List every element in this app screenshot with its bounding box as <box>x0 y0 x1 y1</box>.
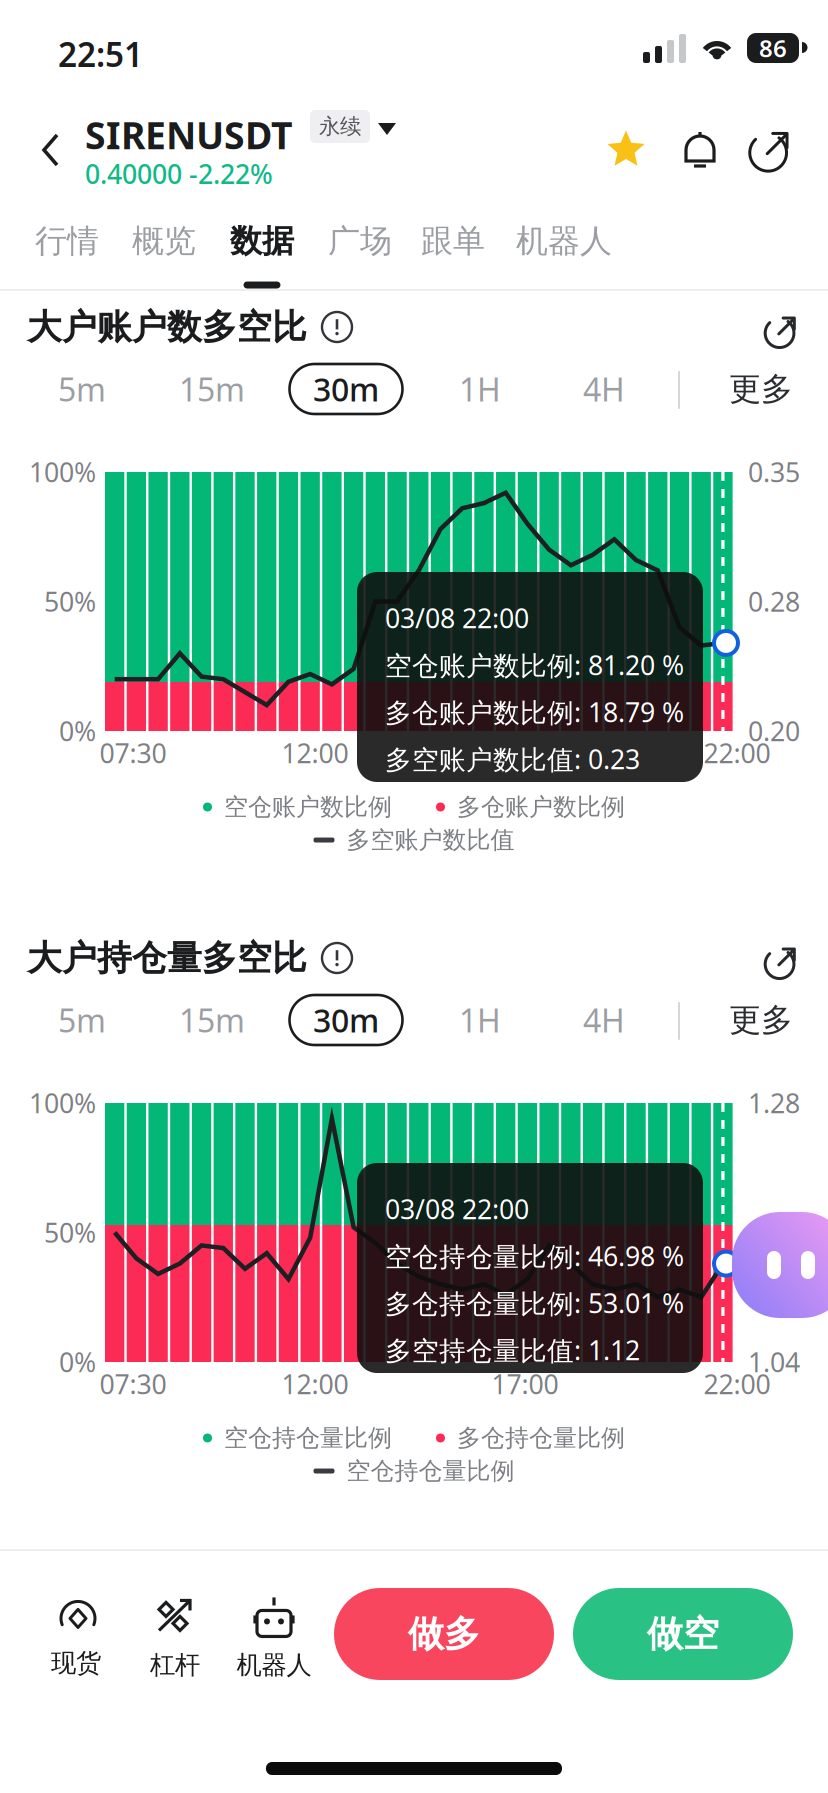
button[interactable]: 概览 <box>118 212 210 290</box>
staticText: 空仓账户数比例 <box>224 792 392 822</box>
staticText: 4H <box>583 999 625 1041</box>
button[interactable]: 1H <box>420 989 540 1051</box>
button[interactable]: Expand chart <box>758 308 804 354</box>
staticText: 杠杆 <box>150 1649 200 1680</box>
staticText: 15m <box>179 999 245 1041</box>
button[interactable]: 30m <box>286 358 406 420</box>
staticText: 更多 <box>729 369 793 409</box>
button[interactable]: 跟单 <box>407 212 499 290</box>
button[interactable]: 行情 <box>21 212 113 290</box>
staticText: 100% <box>29 454 96 490</box>
button[interactable]: Expand chart <box>758 939 804 985</box>
staticText: 概览 <box>132 221 196 261</box>
staticText: 07:30 <box>99 1366 166 1402</box>
staticText: 0.28 <box>748 584 800 619</box>
staticText: 永续 <box>319 113 361 140</box>
button[interactable]: 1H <box>420 358 540 420</box>
staticText: 0% <box>59 1344 96 1380</box>
staticText: 12:00 <box>281 735 348 771</box>
staticText: 多空持仓量比值: 1.12 <box>385 1332 640 1368</box>
staticText: 22:00 <box>703 1366 770 1402</box>
staticText: 行情 <box>35 221 99 261</box>
staticText: 100% <box>29 1085 96 1121</box>
staticText: 17:00 <box>491 1366 558 1402</box>
staticText: 0.40000 -2.22% <box>85 156 273 191</box>
button[interactable]: 4H <box>544 989 664 1051</box>
button[interactable]: 做空 <box>573 1588 793 1680</box>
staticText: 0% <box>59 713 96 749</box>
staticText: 5m <box>58 368 106 410</box>
button[interactable]: 15m <box>152 358 272 420</box>
staticText: 4H <box>583 368 625 410</box>
button[interactable]: 广场 <box>314 212 406 290</box>
button[interactable]: 现货 <box>28 1593 124 1683</box>
staticText: 03/08 22:00 <box>385 1191 529 1227</box>
button[interactable]: 30m <box>286 989 406 1051</box>
button[interactable]: Price alert <box>672 122 728 178</box>
staticText: 22:51 <box>58 32 143 76</box>
staticText: 0.35 <box>748 454 800 490</box>
staticText: 空仓持仓量比例 <box>346 1456 514 1486</box>
staticText: 多空账户数比值 <box>346 825 514 855</box>
staticText: 1.16 <box>748 1215 800 1250</box>
button[interactable]: 机器人 <box>502 212 626 290</box>
button[interactable]: Favorite <box>598 122 654 178</box>
staticText: 多仓持仓量比例 <box>457 1423 625 1453</box>
staticText: 机器人 <box>516 221 612 261</box>
button[interactable]: Share <box>742 122 798 178</box>
staticText: 跟单 <box>421 221 485 261</box>
staticText: 12:00 <box>281 1366 348 1402</box>
staticText: 5m <box>58 999 106 1041</box>
staticText: 1H <box>459 999 501 1041</box>
button[interactable]: 更多 <box>718 358 804 420</box>
button[interactable]: 15m <box>152 989 272 1051</box>
staticText: 机器人 <box>236 1649 311 1680</box>
staticText: 做空 <box>647 1612 719 1656</box>
button[interactable]: 4H <box>544 358 664 420</box>
staticText: 空仓持仓量比例: 46.98 % <box>385 1238 684 1274</box>
staticText: 大户账户数多空比 <box>27 306 307 349</box>
staticText: 30m <box>313 999 379 1041</box>
staticText: 多仓账户数比例: 18.79 % <box>385 694 684 730</box>
staticText: 多仓持仓量比例: 53.01 % <box>385 1285 684 1321</box>
staticText: 22:00 <box>703 735 770 771</box>
staticText: 空仓持仓量比例 <box>224 1423 392 1453</box>
button[interactable]: 5m <box>22 989 142 1051</box>
button[interactable]: 5m <box>22 358 142 420</box>
staticText: 广场 <box>328 221 392 261</box>
staticText: 做多 <box>408 1612 480 1656</box>
button[interactable]: Back <box>22 122 80 180</box>
staticText: 1.28 <box>748 1085 800 1121</box>
staticText: SIRENUSDT <box>85 110 293 160</box>
staticText: 07:30 <box>99 735 166 771</box>
staticText: 50% <box>44 1215 96 1250</box>
staticText: 50% <box>44 584 96 619</box>
staticText: 15m <box>179 368 245 410</box>
staticText: 0.20 <box>748 713 800 749</box>
staticText: 30m <box>313 368 379 410</box>
staticText: 86 <box>759 32 787 64</box>
staticText: 1H <box>459 368 501 410</box>
staticText: 03/08 22:00 <box>385 600 529 636</box>
button[interactable]: 数据 <box>216 212 308 290</box>
staticText: 多仓账户数比例 <box>457 792 625 822</box>
staticText: 更多 <box>729 1000 793 1040</box>
staticText: 空仓账户数比例: 81.20 % <box>385 647 684 683</box>
staticText: 1.04 <box>748 1344 800 1380</box>
staticText: 大户持仓量多空比 <box>27 937 307 980</box>
staticText: 现货 <box>51 1647 101 1678</box>
button[interactable]: 杠杆 <box>127 1593 223 1683</box>
button[interactable]: 机器人 <box>219 1593 329 1683</box>
staticText: 多空账户数比值: 0.23 <box>385 741 640 777</box>
staticText: 数据 <box>230 221 294 261</box>
button[interactable]: 做多 <box>334 1588 554 1680</box>
button[interactable]: 更多 <box>718 989 804 1051</box>
